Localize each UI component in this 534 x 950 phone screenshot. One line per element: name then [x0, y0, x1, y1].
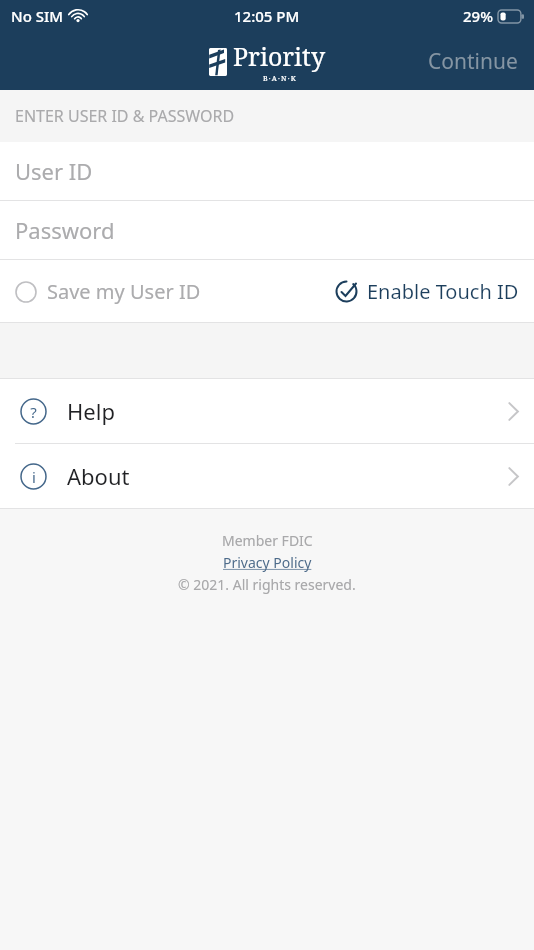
button[interactable]: ? [0, 379, 534, 443]
button[interactable]: Enable Touch ID [325, 270, 534, 313]
staticText: Save my User ID [47, 278, 201, 305]
staticText: Privacy Policy [223, 553, 312, 572]
staticText: About [67, 461, 130, 491]
button[interactable]: i [0, 444, 534, 508]
staticText: Help [67, 396, 115, 426]
staticText: Member FDIC [222, 531, 313, 550]
button[interactable]: Privacy Policy [223, 553, 312, 572]
staticText: Continue [428, 47, 518, 76]
staticText: Enable Touch ID [367, 278, 519, 305]
staticText: No SIM [11, 6, 64, 26]
staticText: B·A·N·K [263, 74, 297, 84]
staticText: User ID [15, 156, 93, 186]
button[interactable]: Continue [412, 37, 534, 86]
staticText: ENTER USER ID & PASSWORD [15, 105, 235, 127]
button[interactable]: Save my User ID [0, 270, 211, 313]
staticText: ? [30, 402, 37, 422]
staticText: 12:05 PM [234, 6, 300, 26]
staticText: © 2021. All rights reserved. [178, 575, 356, 594]
button[interactable]: User ID [0, 142, 534, 200]
staticText: Password [15, 215, 115, 245]
button[interactable]: Password [0, 201, 534, 259]
staticText: Priority [233, 39, 326, 73]
staticText: 29% [463, 6, 493, 26]
staticText: i [32, 467, 36, 487]
